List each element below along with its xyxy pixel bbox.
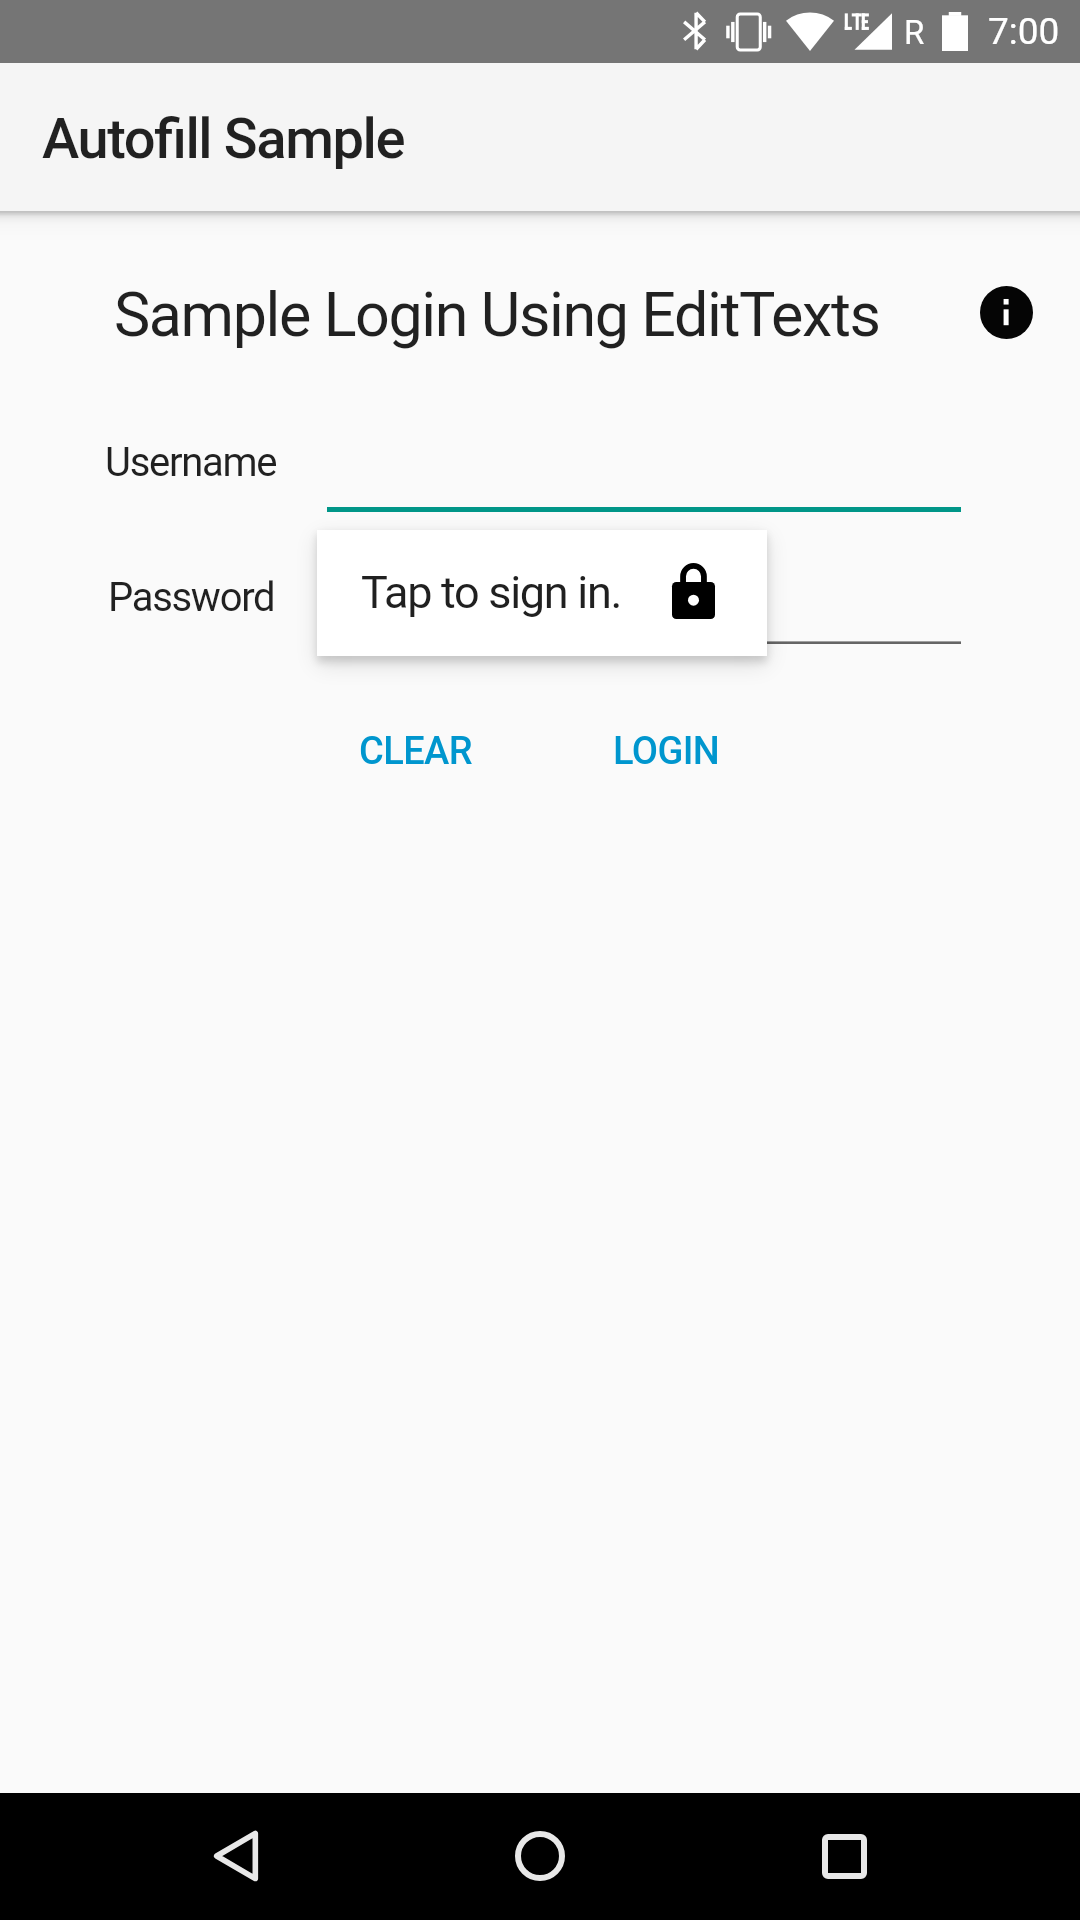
staticText: Autofill Sample <box>42 106 405 172</box>
staticText: LOGIN <box>613 729 720 774</box>
staticText: CLEAR <box>359 729 472 774</box>
staticText: Password <box>108 574 275 621</box>
button[interactable]: Back <box>176 1796 296 1916</box>
staticText: Username <box>105 439 277 486</box>
staticText: R <box>904 13 925 52</box>
button[interactable]: CLEAR <box>329 714 501 789</box>
button[interactable]: Recent apps <box>784 1796 904 1916</box>
button[interactable]: Info <box>980 286 1033 339</box>
staticText: Sample Login Using EditTexts <box>114 279 880 350</box>
staticText: Tap to sign in. <box>361 566 621 619</box>
staticText: 7:00 <box>988 10 1060 53</box>
button[interactable]: Tap to sign in. <box>317 530 767 656</box>
button[interactable]: Home <box>480 1796 600 1916</box>
button[interactable]: LOGIN <box>580 714 752 789</box>
